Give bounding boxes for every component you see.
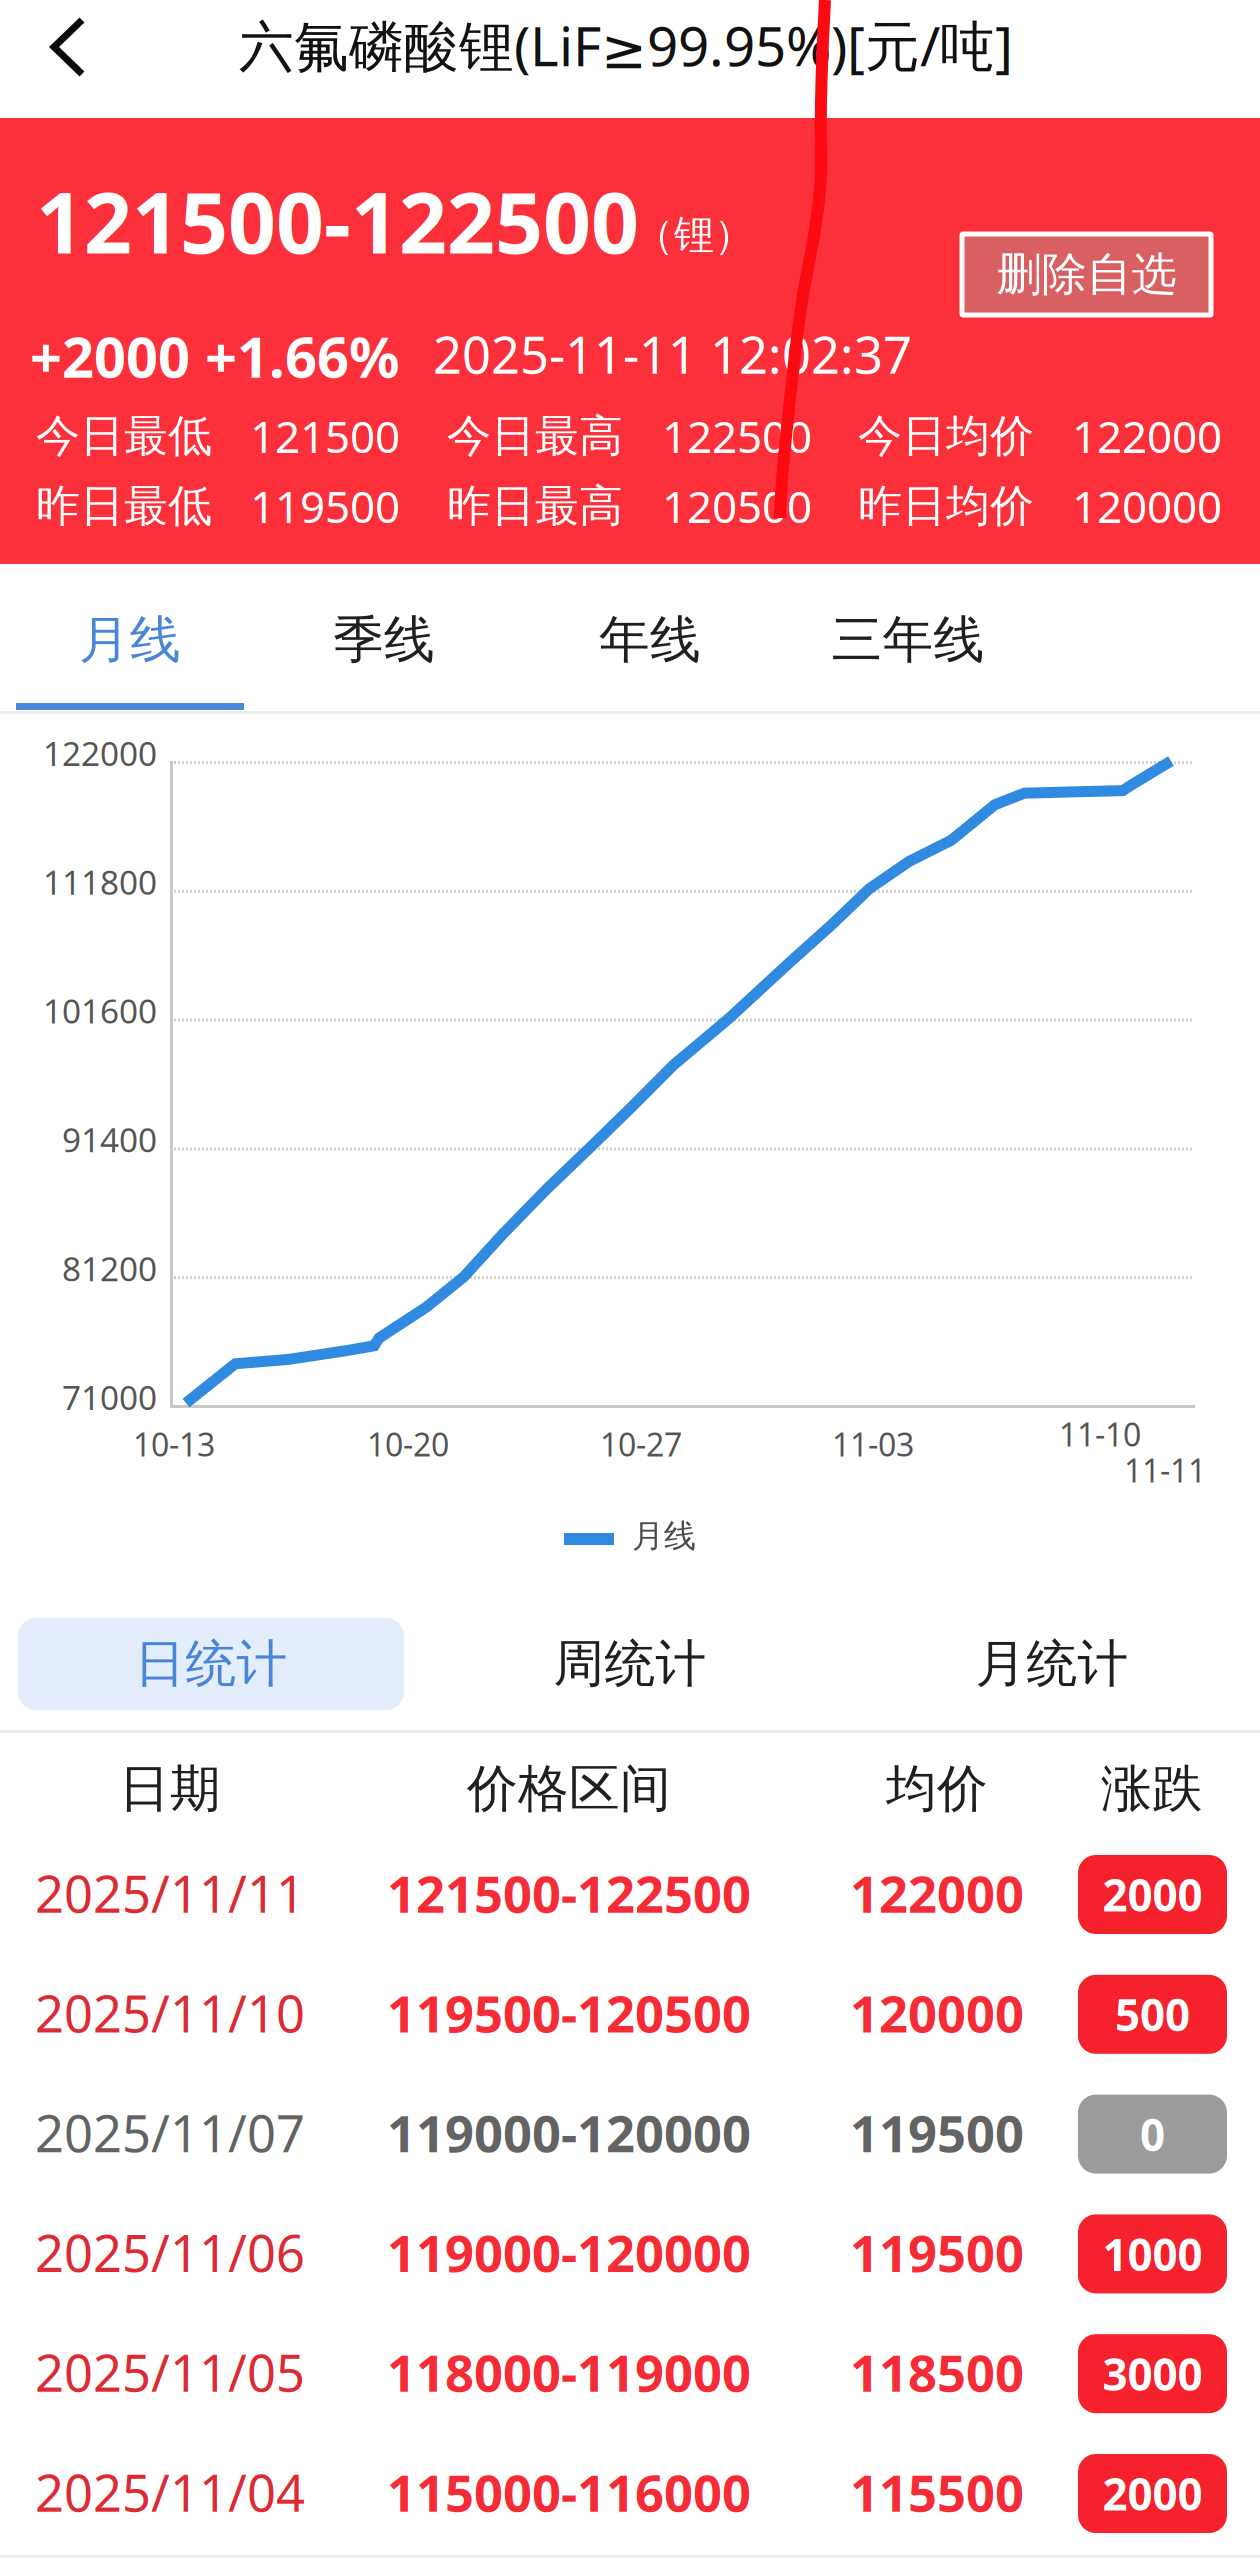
button[interactable]: 2025/11/04 xyxy=(0,2435,1260,2555)
staticText: 10-27 xyxy=(600,1423,682,1465)
staticText: 月统计 xyxy=(975,1633,1128,1695)
staticText: 121500-122500 xyxy=(36,165,639,277)
staticText: 101600 xyxy=(43,988,157,1033)
button[interactable]: 年线 xyxy=(530,570,770,710)
staticText: 119500-120500 xyxy=(387,1979,751,2046)
staticText: 1000 xyxy=(1102,2225,1202,2283)
staticText: 119000-120000 xyxy=(387,2099,751,2166)
staticText: 10-13 xyxy=(133,1423,215,1465)
staticText: 500 xyxy=(1115,1985,1190,2043)
staticText: 91400 xyxy=(62,1117,157,1162)
staticText: 119500 xyxy=(850,2219,1024,2286)
staticText: 122000 xyxy=(43,731,157,775)
staticText: 昨日最低 xyxy=(36,479,212,533)
button[interactable]: 季线 xyxy=(264,570,504,710)
staticText: 周统计 xyxy=(553,1633,706,1695)
staticText: 121500-122500 xyxy=(387,1859,751,1927)
staticText: 81200 xyxy=(62,1246,157,1290)
staticText: 118500 xyxy=(850,2339,1024,2406)
staticText: 71000 xyxy=(62,1375,157,1419)
staticText: 11-10 xyxy=(1059,1413,1141,1455)
staticText: 日统计 xyxy=(134,1633,287,1695)
staticText: 三年线 xyxy=(831,609,984,671)
staticText: 122000 xyxy=(850,1859,1024,1927)
button[interactable]: 月统计 xyxy=(859,1618,1245,1710)
staticText: 年线 xyxy=(599,609,701,671)
button[interactable]: 2025/11/06 xyxy=(0,2195,1260,2315)
staticText: 119500 xyxy=(250,477,400,535)
staticText: 2025/11/06 xyxy=(35,2219,305,2286)
staticText: 2025/11/11 xyxy=(35,1859,305,1927)
staticText: 121500 xyxy=(250,407,400,465)
staticText: 119000-120000 xyxy=(387,2219,751,2286)
button[interactable]: 三年线 xyxy=(788,570,1028,710)
button[interactable]: 2025/11/05 xyxy=(0,2315,1260,2435)
staticText: +2000 +1.66% xyxy=(30,319,400,393)
button[interactable]: 月线 xyxy=(10,570,250,710)
staticText: 价格区间 xyxy=(467,1758,671,1820)
staticText: 今日最低 xyxy=(36,409,212,463)
staticText: 今日最高 xyxy=(447,409,623,463)
staticText: 120000 xyxy=(850,1979,1024,2046)
staticText: 月线 xyxy=(79,609,181,671)
staticText: 120000 xyxy=(1072,477,1222,535)
button[interactable]: 2025/11/10 xyxy=(0,1956,1260,2076)
staticText: 昨日最高 xyxy=(447,479,623,533)
staticText: 115000-116000 xyxy=(387,2458,751,2526)
staticText: 120500 xyxy=(662,477,812,535)
staticText: 月线 xyxy=(632,1516,696,1556)
staticText: 日期 xyxy=(119,1758,221,1820)
staticText: 3000 xyxy=(1102,2344,1202,2403)
staticText: 111800 xyxy=(43,860,157,904)
button[interactable]: 2025/11/11 xyxy=(0,1836,1260,1956)
button[interactable]: 日统计 xyxy=(18,1618,404,1710)
staticText: 115500 xyxy=(850,2458,1024,2526)
staticText: 11-11 xyxy=(1124,1449,1206,1491)
staticText: 118000-119000 xyxy=(387,2339,751,2406)
staticText: 季线 xyxy=(333,609,435,671)
staticText: 涨跌 xyxy=(1101,1758,1203,1820)
staticText: 2000 xyxy=(1102,1865,1202,1924)
staticText: 122000 xyxy=(1072,407,1222,465)
staticText: 均价 xyxy=(886,1758,988,1820)
staticText: 昨日均价 xyxy=(858,479,1034,533)
staticText: 删除自选 xyxy=(996,247,1176,302)
button[interactable]: 周统计 xyxy=(437,1618,823,1710)
staticText: 2025/11/04 xyxy=(35,2458,305,2526)
staticText: 119500 xyxy=(850,2099,1024,2166)
staticText: 10-20 xyxy=(367,1423,449,1465)
button[interactable]: 删除自选 xyxy=(962,234,1211,315)
staticText: 2025/11/05 xyxy=(35,2339,305,2406)
button[interactable]: 返回 xyxy=(0,0,160,116)
staticText: 2025/11/10 xyxy=(35,1979,305,2046)
staticText: 六氟磷酸锂(LiF≥99.95%)[元/吨] xyxy=(239,9,1013,81)
staticText: 今日均价 xyxy=(858,409,1034,463)
staticText: 2025/11/07 xyxy=(35,2099,305,2166)
staticText: 2000 xyxy=(1102,2464,1202,2523)
staticText: 11-03 xyxy=(832,1423,914,1465)
staticText: 0 xyxy=(1140,2105,1165,2163)
staticText: 2025-11-11 12:02:37 xyxy=(433,320,912,388)
button[interactable]: 2025/11/07 xyxy=(0,2076,1260,2195)
staticText: （锂） xyxy=(634,210,754,259)
staticText: 122500 xyxy=(662,407,812,465)
